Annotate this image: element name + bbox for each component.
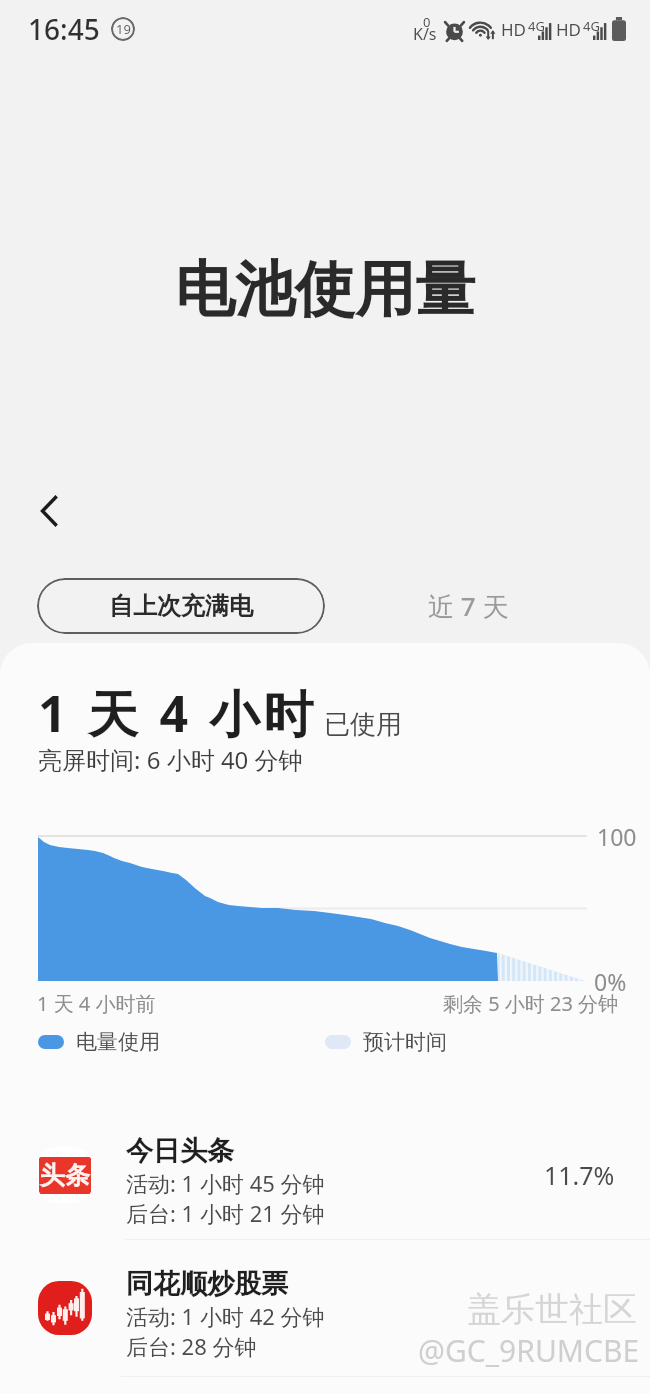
staticText: 11.7%: [544, 1158, 615, 1192]
staticText: 4G: [583, 17, 600, 35]
staticText: 自上次充满电: [109, 591, 253, 621]
staticText: 近 7 天: [428, 588, 509, 624]
button[interactable]: Back: [23, 485, 75, 537]
staticText: 100: [597, 821, 637, 852]
staticText: 19: [116, 20, 131, 38]
staticText: 1 天 4 小时前: [37, 990, 156, 1017]
staticText: 活动: 1 小时 45 分钟: [126, 1168, 325, 1198]
staticText: 电量使用: [76, 1029, 160, 1055]
staticText: HD: [556, 18, 582, 41]
staticText: K/s: [413, 23, 437, 45]
staticText: 预计时间: [363, 1029, 447, 1055]
staticText: HD: [501, 18, 527, 41]
staticText: 电池使用量: [175, 252, 475, 328]
staticText: 0%: [594, 966, 627, 997]
staticText: @GC_9RUMCBE: [418, 1330, 640, 1371]
staticText: 后台: 1 小时 21 分钟: [126, 1198, 325, 1228]
staticText: 1 天 4 小时: [38, 679, 318, 747]
staticText: 16:45: [28, 10, 100, 48]
staticText: 头条: [40, 1160, 90, 1191]
staticText: 已使用: [324, 708, 402, 741]
staticText: 同花顺炒股票: [126, 1267, 288, 1301]
button[interactable]: 头条: [0, 1132, 650, 1244]
staticText: 剩余 5 小时 23 分钟: [443, 990, 619, 1017]
button[interactable]: 近 7 天: [368, 578, 568, 634]
staticText: 今日头条: [126, 1134, 234, 1168]
staticText: 活动: 1 小时 42 分钟: [126, 1301, 325, 1331]
staticText: 0: [423, 13, 431, 31]
staticText: 后台: 28 分钟: [126, 1331, 257, 1361]
staticText: 盖乐世社区: [467, 1288, 637, 1331]
button[interactable]: 自上次充满电: [37, 578, 325, 634]
staticText: 亮屏时间: 6 小时 40 分钟: [38, 743, 303, 776]
button[interactable]: 同花顺炒股票: [0, 1265, 650, 1377]
staticText: 4G: [528, 17, 545, 35]
